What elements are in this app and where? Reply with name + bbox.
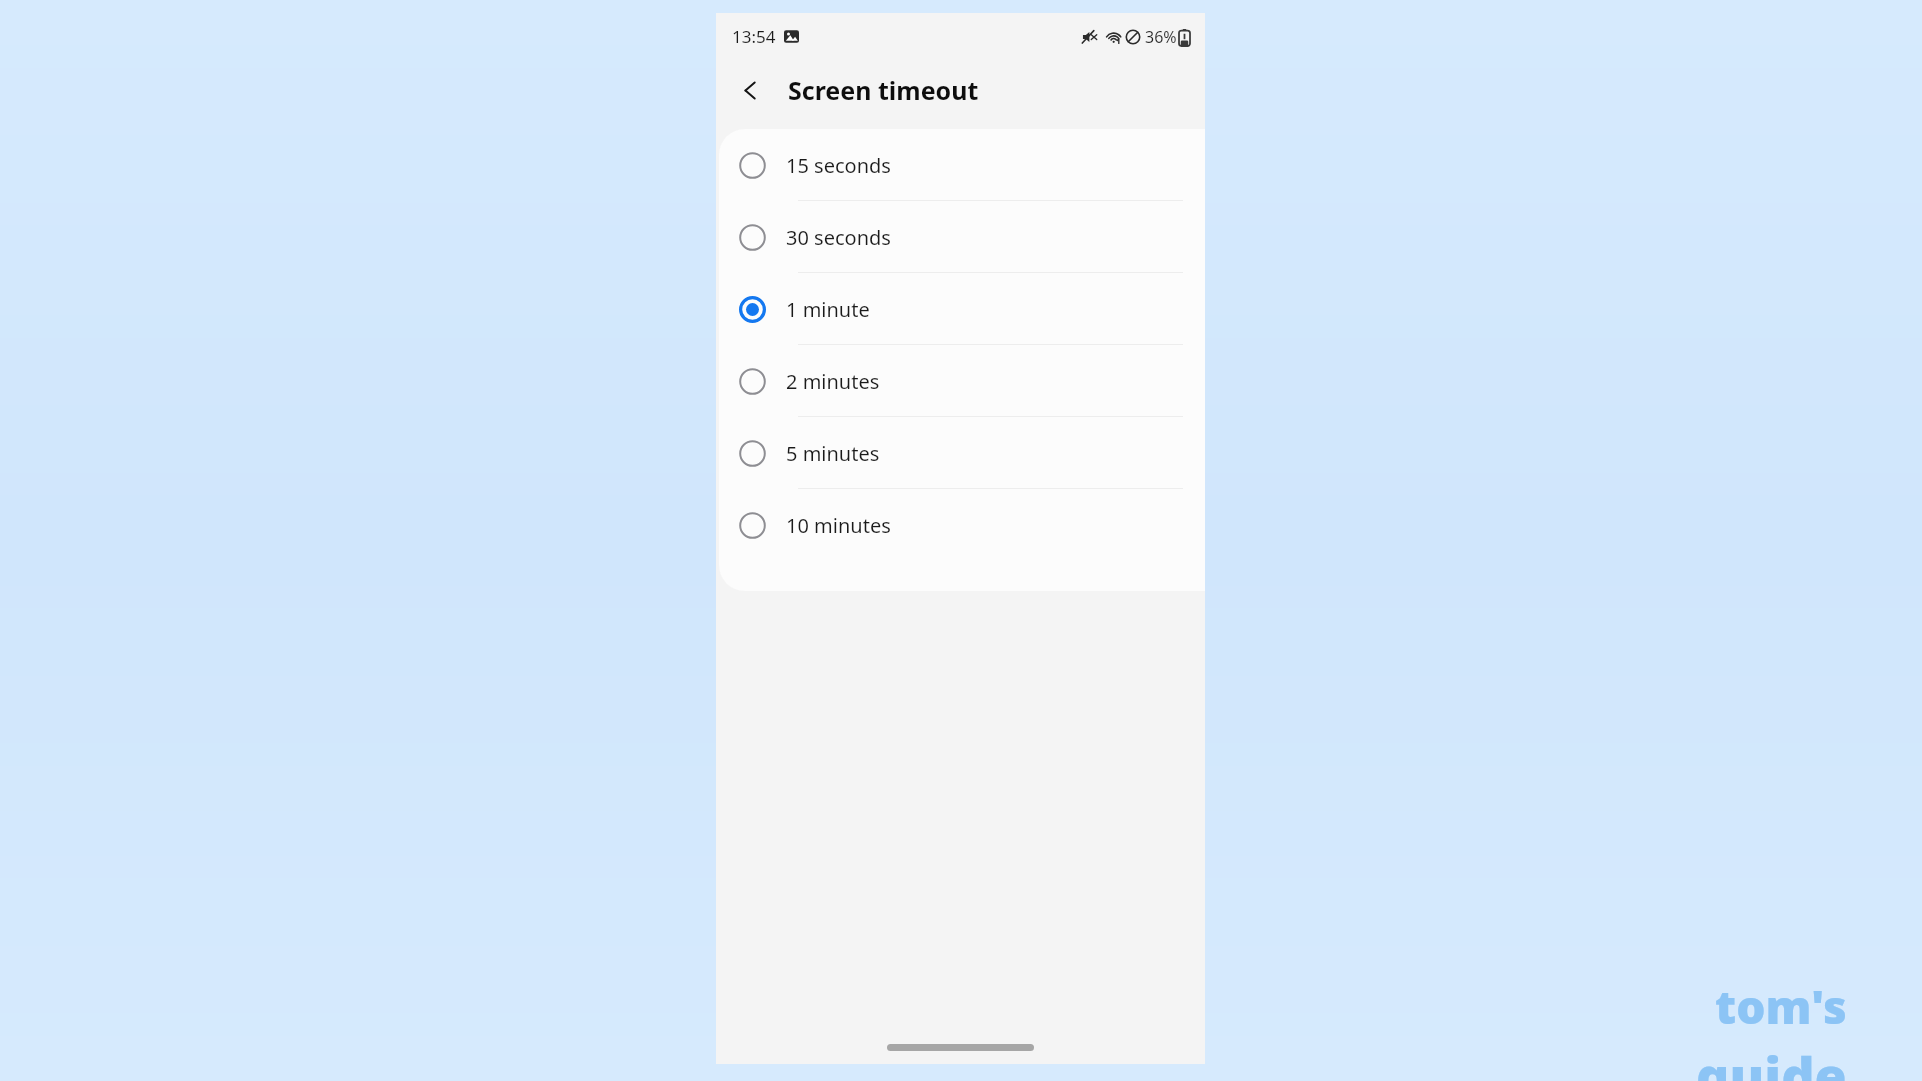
staticText: 2 minutes	[786, 368, 880, 395]
staticText: 36%	[1145, 26, 1177, 48]
staticText: guide	[1696, 1039, 1847, 1081]
staticText: Screen timeout	[788, 73, 979, 107]
staticText: 30 seconds	[786, 224, 891, 251]
button[interactable]: 30 seconds	[719, 201, 1205, 273]
button[interactable]: 5 minutes	[719, 417, 1205, 489]
button[interactable]: 1 minute	[719, 273, 1205, 345]
staticText: 13:54	[732, 25, 776, 48]
button[interactable]: Back	[730, 70, 770, 110]
staticText: tom's	[1715, 975, 1847, 1038]
staticText: 10 minutes	[786, 512, 891, 539]
button[interactable]: 10 minutes	[719, 489, 1205, 565]
staticText: 5 minutes	[786, 440, 880, 467]
button[interactable]: 15 seconds	[719, 129, 1205, 201]
staticText: 1 minute	[786, 296, 870, 323]
button[interactable]: 2 minutes	[719, 345, 1205, 417]
staticText: 15 seconds	[786, 152, 891, 179]
